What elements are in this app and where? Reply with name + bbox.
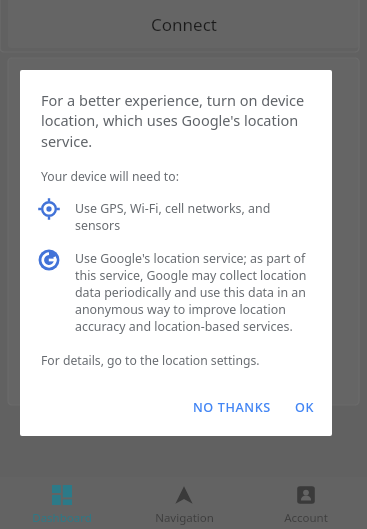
- staticText: Dashboard: [32, 510, 92, 526]
- staticText: Navigation: [155, 510, 214, 526]
- staticText: Account: [284, 510, 328, 526]
- staticText: Connect: [151, 13, 217, 36]
- button[interactable]: Dashboard: [0, 477, 123, 529]
- other: Dashboard: [52, 485, 72, 505]
- other: Google: [38, 249, 60, 271]
- button[interactable]: OK: [286, 391, 324, 424]
- other: GPS: [38, 198, 60, 220]
- staticText: For details, go to the location settings…: [41, 352, 260, 369]
- staticText: OK: [295, 399, 315, 416]
- other: Navigation: [174, 485, 194, 505]
- button[interactable]: NO THANKS: [184, 391, 280, 424]
- button[interactable]: Connect: [8, 0, 359, 48]
- staticText: Your device will need to:: [41, 168, 179, 185]
- staticText: Use Google's location service; as part o…: [75, 250, 316, 335]
- staticText: NO THANKS: [193, 399, 271, 416]
- staticText: For a better experience, turn on device …: [41, 90, 310, 152]
- other: Account: [296, 485, 316, 505]
- staticText: Use GPS, Wi-Fi, cell networks, and senso…: [75, 200, 314, 234]
- button[interactable]: Navigation: [123, 477, 245, 529]
- button[interactable]: Account: [245, 477, 367, 529]
